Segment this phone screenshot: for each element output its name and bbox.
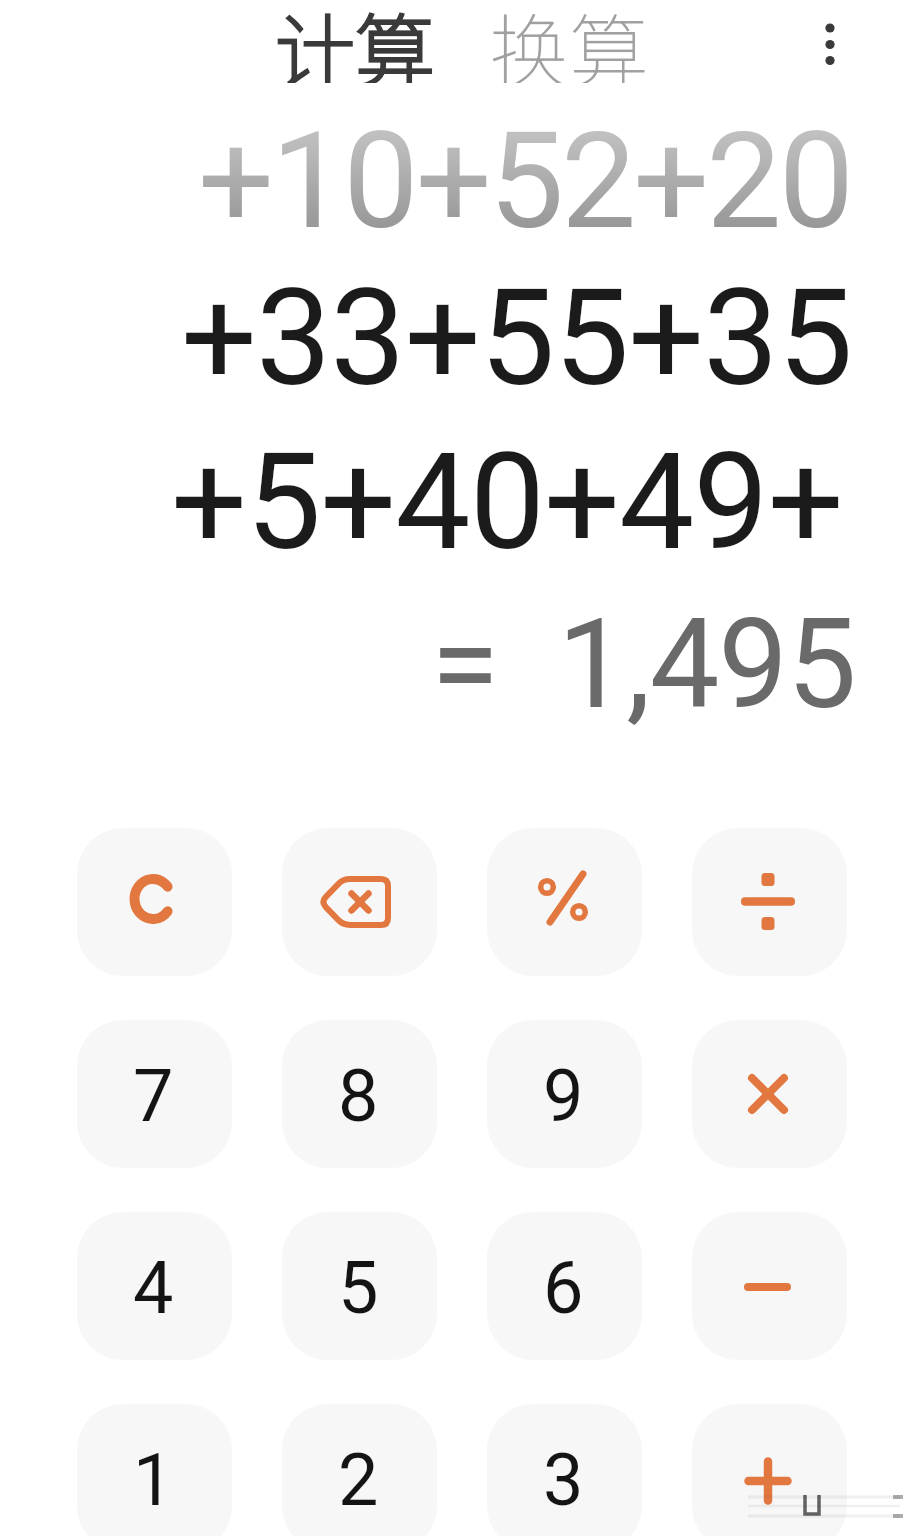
- button[interactable]: 换算: [479, 0, 659, 83]
- staticText: 8: [338, 1054, 379, 1138]
- staticText: 9: [543, 1054, 584, 1138]
- button[interactable]: 1: [77, 1404, 232, 1536]
- staticText: 4: [133, 1246, 174, 1330]
- staticText: 2: [338, 1438, 379, 1522]
- staticText: 7: [133, 1054, 174, 1138]
- button[interactable]: 7: [77, 1020, 232, 1168]
- staticText: 计算: [275, 0, 435, 83]
- button[interactable]: 5: [282, 1212, 437, 1360]
- staticText: 1: [133, 1438, 174, 1522]
- staticText: = 1,495: [431, 592, 856, 737]
- button[interactable]: [692, 1020, 847, 1168]
- staticText: 3: [543, 1438, 584, 1522]
- staticText: 换算: [489, 0, 649, 83]
- staticText: +5+40+49+: [171, 424, 843, 581]
- button[interactable]: 计算: [265, 0, 445, 83]
- button[interactable]: 8: [282, 1020, 437, 1168]
- button[interactable]: 3: [487, 1404, 642, 1536]
- button[interactable]: 6: [487, 1212, 642, 1360]
- button[interactable]: [692, 1404, 847, 1536]
- staticText: 6: [543, 1246, 584, 1330]
- button[interactable]: 9: [487, 1020, 642, 1168]
- button[interactable]: [487, 828, 642, 976]
- button[interactable]: [810, 10, 850, 80]
- staticText: 5: [338, 1246, 379, 1330]
- staticText: +10+52+20: [198, 103, 851, 260]
- button[interactable]: 4: [77, 1212, 232, 1360]
- button[interactable]: 2: [282, 1404, 437, 1536]
- button[interactable]: [77, 828, 232, 976]
- button[interactable]: [282, 828, 437, 976]
- button[interactable]: [692, 1212, 847, 1360]
- staticText: 计算: [275, 0, 435, 83]
- button[interactable]: [692, 828, 847, 976]
- staticText: +33+55+35: [181, 260, 852, 417]
